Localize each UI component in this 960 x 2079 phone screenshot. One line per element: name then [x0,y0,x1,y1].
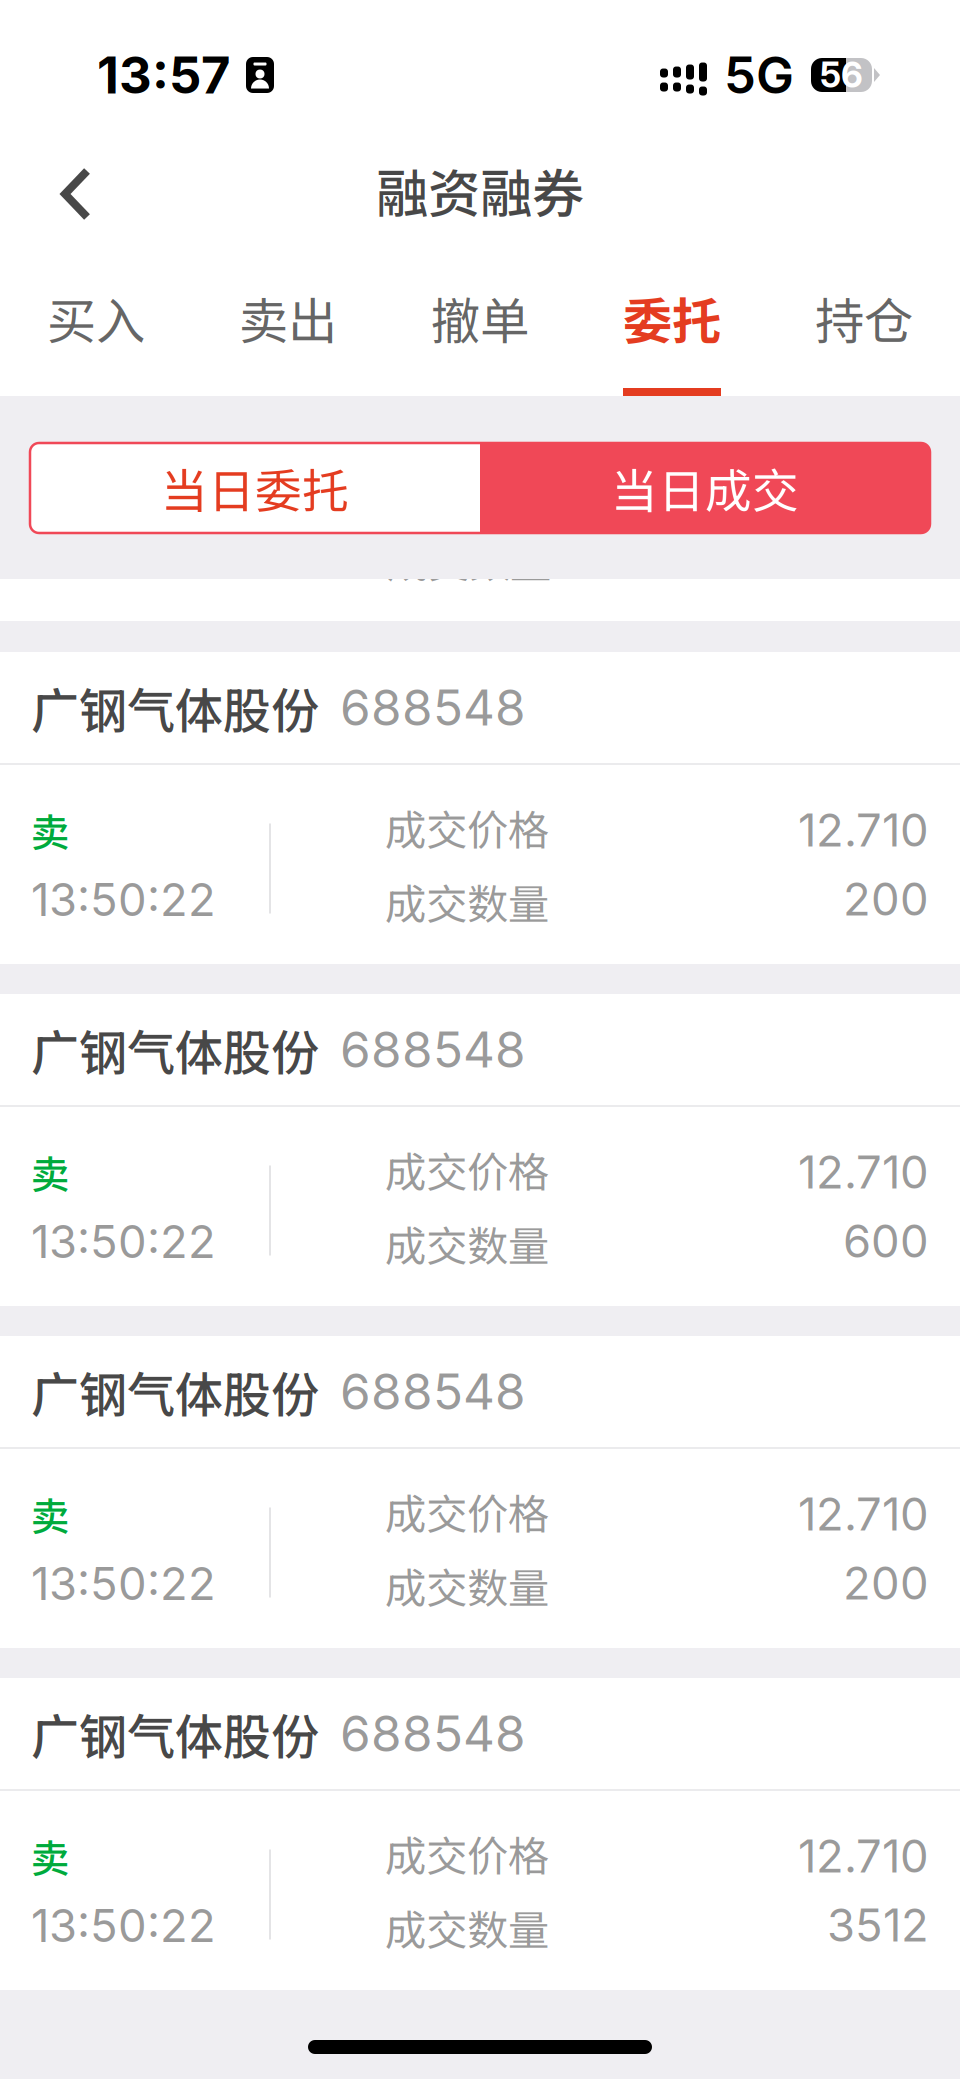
button[interactable]: 委托 [576,260,768,396]
staticText: 委托 [623,282,721,353]
staticText: 广钢气体股份 [31,1699,319,1768]
staticText: 12.710 [798,803,929,857]
staticText: 成交数量 [387,530,551,590]
staticText: 13:50:22 [31,1898,216,1953]
staticText: 688548 [340,678,526,737]
button[interactable]: 广钢气体股份 [0,652,960,964]
staticText: 13:50:22 [31,1214,216,1269]
staticText: 卖 [31,1486,70,1542]
staticText: 广钢气体股份 [31,1357,319,1426]
staticText: 12.710 [798,1829,929,1883]
staticText: 13:57 [97,44,230,106]
staticText: 12.710 [798,1145,929,1199]
staticText: 成交数量 [385,1897,549,1957]
staticText: 广钢气体股份 [31,1015,319,1084]
staticText: 持仓 [815,282,913,353]
staticText: 撤单 [431,282,529,353]
staticText: 3512 [827,1897,929,1952]
staticText: 12.710 [798,1487,929,1541]
button[interactable]: 广钢气体股份 [0,1336,960,1648]
staticText: 688548 [340,1704,526,1763]
button[interactable]: 卖出 [192,260,384,396]
staticText: 成交价格 [385,1140,549,1199]
staticText: 卖出 [239,282,337,353]
staticText: 600 [843,1213,929,1268]
staticText: 当日成交 [611,454,799,522]
staticText: 200 [843,1555,929,1610]
button[interactable]: 广钢气体股份 [0,994,960,1306]
staticText: 成交数量 [385,871,549,931]
staticText: 当日委托 [161,454,349,522]
staticText: 成交价格 [385,1482,549,1541]
button[interactable]: 撤单 [384,260,576,396]
staticText: 卖 [31,1144,70,1200]
staticText: 成交数量 [385,1213,549,1273]
staticText: 融资融券 [376,152,584,228]
button[interactable]: 当日委托 [30,443,480,533]
staticText: 688548 [340,1362,526,1421]
staticText: 688548 [340,1020,526,1079]
staticText: 成交价格 [385,1824,549,1883]
staticText: 56 [820,54,863,96]
staticText: 200 [843,871,929,926]
button[interactable]: 当日成交 [480,443,930,533]
staticText: 买入 [47,282,145,353]
staticText: 卖 [31,802,70,858]
staticText: 13:50:22 [31,872,216,927]
button[interactable]: 广钢气体股份 [0,1678,960,1990]
staticText: 广钢气体股份 [31,673,319,742]
staticText: 5G [724,44,794,106]
button[interactable]: 买入 [0,260,192,396]
staticText: 成交数量 [385,1555,549,1615]
button[interactable]: Back [0,120,118,260]
staticText: 卖 [31,1828,70,1884]
staticText: 成交价格 [385,798,549,857]
button[interactable]: 持仓 [768,260,960,396]
staticText: 13:50:22 [31,1556,216,1611]
